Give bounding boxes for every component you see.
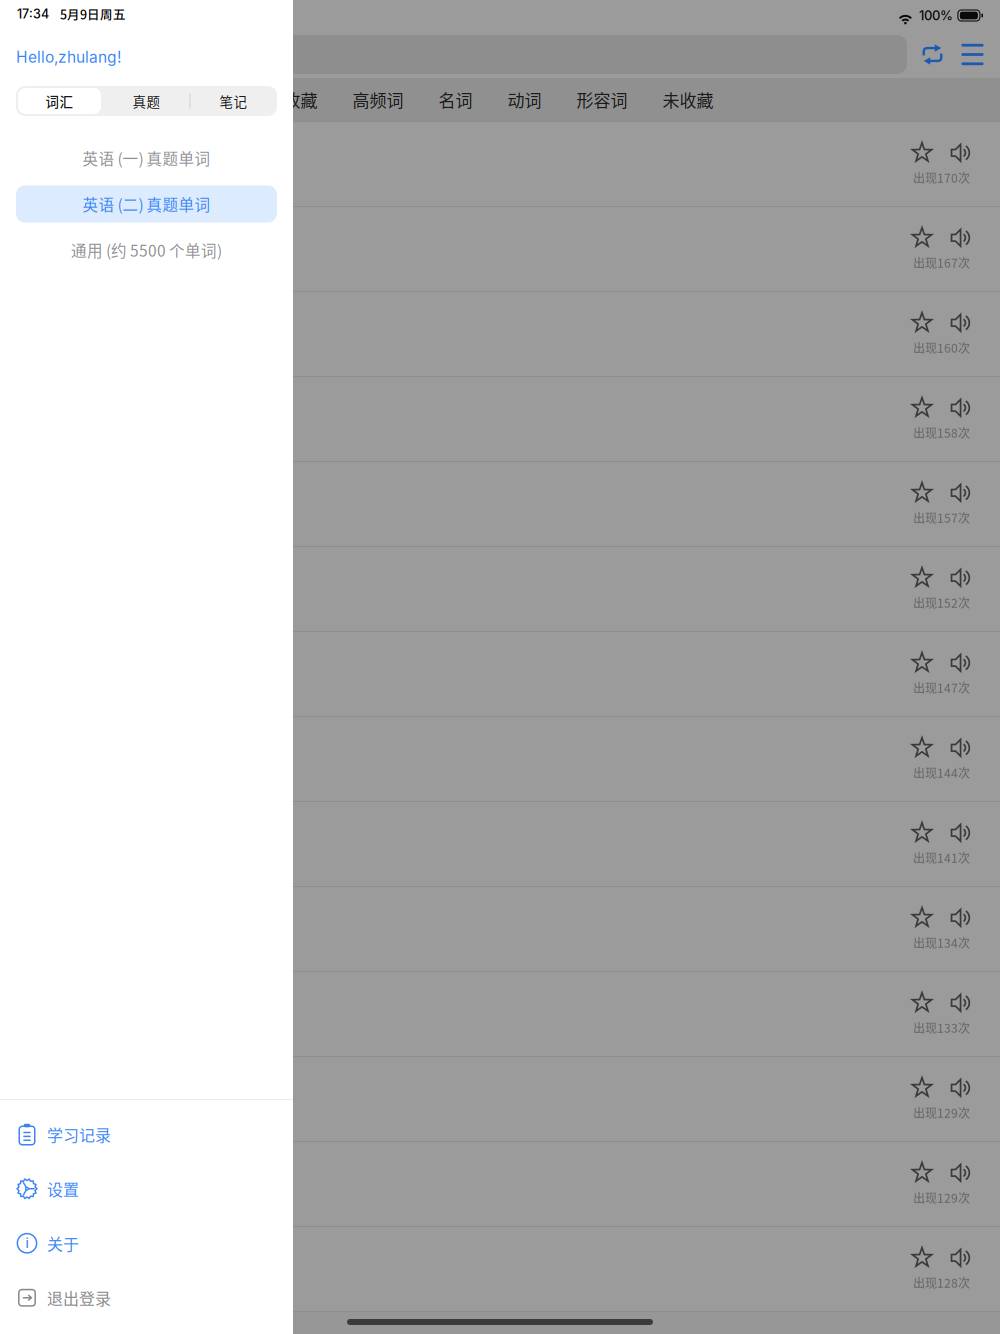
button[interactable]: Pronounce (950, 652, 972, 674)
button[interactable]: Pronounce (950, 907, 972, 929)
staticText: 出现128次 (913, 1274, 970, 1291)
button[interactable]: 笔记 (190, 86, 277, 116)
button[interactable]: Pronounce (950, 822, 972, 844)
button[interactable]: Favourite (911, 312, 933, 334)
staticText: 通用 (约 5500 个单词) (71, 239, 222, 261)
staticText: 出现170次 (913, 169, 970, 186)
staticText: 出现152次 (913, 594, 970, 611)
staticText: 出现144次 (913, 764, 970, 781)
staticText: 出现167次 (913, 254, 970, 271)
button[interactable]: 学习记录 (0, 1107, 293, 1161)
button[interactable]: 未收藏 (645, 78, 731, 121)
button[interactable]: 英语 (一) 真题单词 (16, 135, 277, 181)
button[interactable]: 名词 (421, 78, 490, 121)
button[interactable]: Pronounce (950, 397, 972, 419)
button[interactable]: Menu (952, 32, 993, 76)
staticText: 学习记录 (47, 1123, 111, 1146)
button[interactable]: 动词 (490, 78, 559, 121)
staticText: 高频词 (352, 87, 403, 112)
button[interactable]: i (0, 1216, 293, 1270)
button[interactable]: Pronounce (950, 1162, 972, 1184)
button[interactable]: Pronounce (950, 312, 972, 334)
staticText: 出现129次 (913, 1189, 970, 1206)
button[interactable]: Favourite (911, 482, 933, 504)
staticText: 5月9日周五 (60, 5, 126, 23)
staticText: 出现160次 (913, 339, 970, 356)
button[interactable]: 退出登录 (0, 1270, 293, 1325)
button[interactable]: Favourite (911, 1247, 933, 1269)
button[interactable]: Pronounce (950, 992, 972, 1014)
staticText: 100% (919, 8, 953, 23)
staticText: 出现157次 (913, 509, 970, 526)
staticText: 出现129次 (913, 1104, 970, 1121)
button[interactable]: 设置 (0, 1161, 293, 1216)
staticText: 出现158次 (913, 424, 970, 441)
staticText: 收藏 (283, 87, 317, 112)
button[interactable]: Pronounce (950, 482, 972, 504)
button[interactable]: Pronounce (950, 227, 972, 249)
staticText: 词汇 (45, 91, 73, 111)
staticText: 未收藏 (662, 87, 713, 112)
staticText: 出现133次 (913, 1019, 970, 1036)
staticText: 真题 (132, 91, 160, 111)
button[interactable]: Favourite (911, 737, 933, 759)
staticText: 出现147次 (913, 679, 970, 696)
button[interactable]: Pronounce (950, 142, 972, 164)
button[interactable]: Favourite (911, 567, 933, 589)
staticText: Hello,zhulang! (16, 48, 121, 66)
button[interactable]: Favourite (911, 1077, 933, 1099)
staticText: 出现141次 (913, 849, 970, 866)
staticText: 设置 (47, 1177, 79, 1200)
staticText: 英语 (二) 真题单词 (82, 193, 210, 215)
button[interactable]: 真题 (103, 86, 190, 116)
button[interactable]: Pronounce (950, 1247, 972, 1269)
button[interactable]: Favourite (911, 1162, 933, 1184)
staticText: 形容词 (576, 87, 627, 112)
staticText: 出现134次 (913, 934, 970, 951)
button[interactable]: 收藏 (266, 78, 335, 121)
staticText: 笔记 (219, 91, 247, 111)
button[interactable]: Favourite (911, 142, 933, 164)
button[interactable]: 词汇 (16, 86, 103, 116)
button[interactable]: 通用 (约 5500 个单词) (16, 227, 277, 273)
button[interactable]: 英语 (二) 真题单词 (16, 181, 277, 227)
staticText: 退出登录 (47, 1286, 111, 1309)
staticText: 17:34 (17, 6, 49, 21)
staticText: 英语 (一) 真题单词 (82, 147, 210, 169)
button[interactable]: Favourite (911, 822, 933, 844)
button[interactable]: 高频词 (335, 78, 421, 121)
staticText: i (25, 1235, 28, 1251)
button[interactable]: Pronounce (950, 567, 972, 589)
button[interactable]: Favourite (911, 992, 933, 1014)
button[interactable]: 形容词 (559, 78, 645, 121)
button[interactable]: Favourite (911, 907, 933, 929)
button[interactable]: Pronounce (950, 1077, 972, 1099)
button[interactable]: Favourite (911, 652, 933, 674)
staticText: 动词 (507, 87, 541, 112)
button[interactable]: Favourite (911, 227, 933, 249)
button[interactable]: Pronounce (950, 737, 972, 759)
staticText: 关于 (47, 1232, 79, 1255)
button[interactable]: Shuffle order (907, 32, 952, 76)
button[interactable]: Favourite (911, 397, 933, 419)
staticText: 名词 (438, 87, 472, 112)
